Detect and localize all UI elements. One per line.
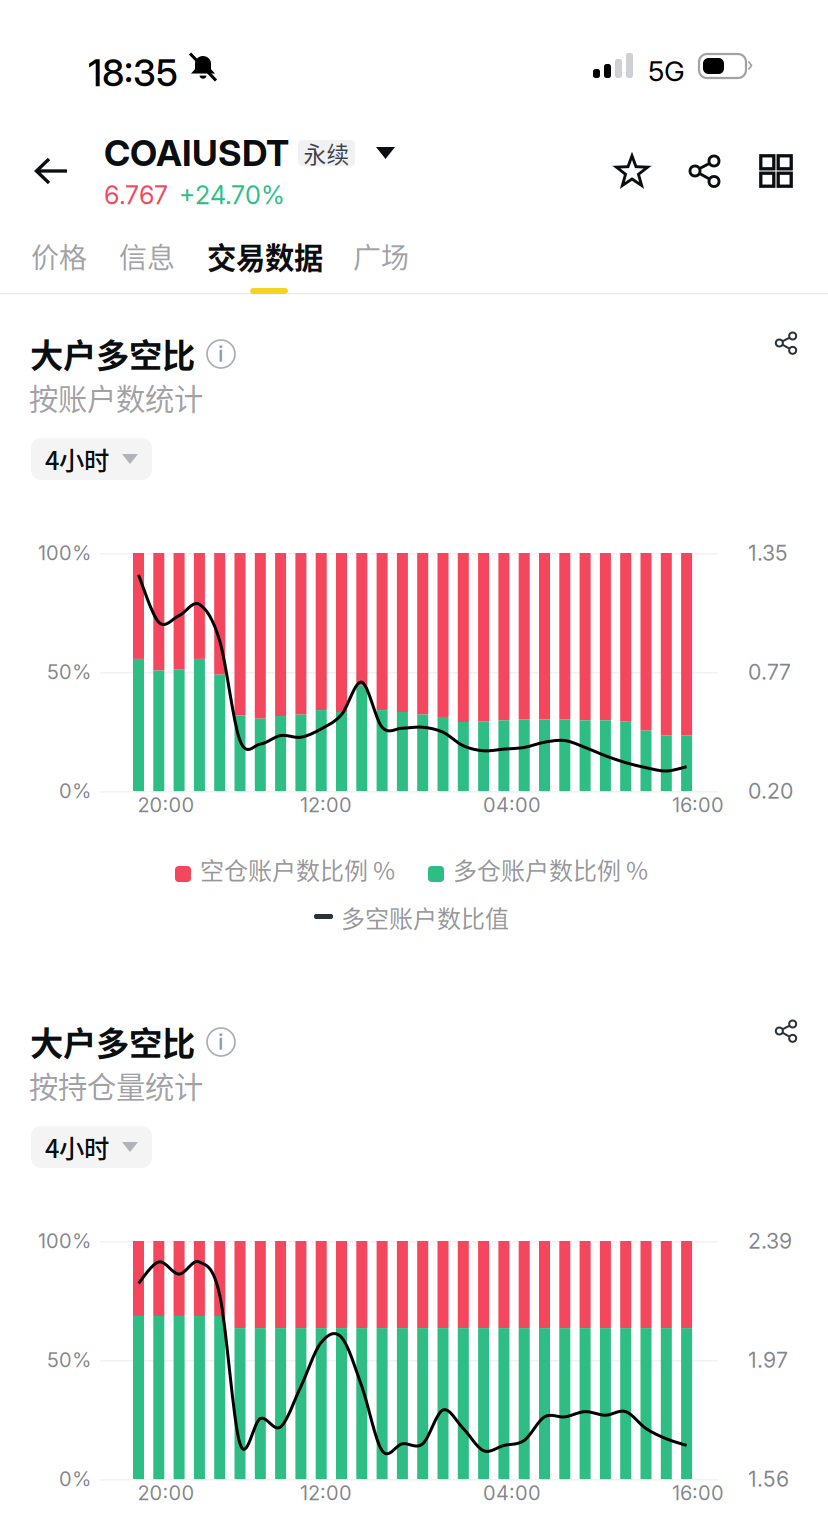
button[interactable]: 交易数据 [201,229,329,283]
button[interactable]: 4小时 [31,438,152,480]
staticText: 0% [59,1467,91,1491]
staticText: 广场 [353,236,409,276]
staticText: i [218,340,224,367]
staticText: 1.97 [748,1347,788,1373]
staticText: 按持仓量统计 [29,1064,203,1106]
staticText: 按账户数统计 [29,376,203,418]
button[interactable]: 价格 [21,229,97,283]
staticText: 0.20 [748,778,793,804]
button[interactable]: Favorite [605,144,659,198]
staticText: 04:00 [483,1481,541,1505]
staticText: 价格 [31,236,87,276]
staticText: 多空账户数比值 [341,900,509,935]
staticText: 16:00 [672,1481,724,1505]
staticText: 20:00 [137,793,194,817]
staticText: i [218,1028,224,1055]
staticText: 交易数据 [207,235,323,277]
staticText: 16:00 [672,793,724,817]
staticText: 1.56 [748,1466,789,1492]
staticText: 大户多空比 [30,329,195,377]
button[interactable]: More options [749,144,803,198]
staticText: 20:00 [137,1481,194,1505]
staticText: 永续 [303,137,349,169]
staticText: 5G [648,54,685,88]
staticText: 0.77 [748,659,791,685]
staticText: 信息 [119,236,175,276]
staticText: 4小时 [45,1129,109,1165]
staticText: 4小时 [45,441,109,477]
button[interactable]: COAIUSDT [104,131,395,175]
button[interactable]: 4小时 [31,1126,152,1168]
staticText: 1.35 [748,540,788,566]
button[interactable]: 信息 [109,229,185,283]
staticText: +24.70% [179,180,285,210]
staticText: 50% [47,1348,91,1372]
button[interactable]: Share chart [763,320,809,366]
staticText: 0% [59,779,91,803]
staticText: 100% [38,1229,91,1253]
staticText: 100% [38,541,91,565]
button[interactable]: Back [10,136,94,206]
staticText: 50% [47,660,91,684]
staticText: 多仓账户数比例 % [453,852,648,887]
staticText: 04:00 [483,793,541,817]
staticText: 2.39 [748,1228,792,1254]
button[interactable]: Share [678,144,731,198]
button[interactable]: Share chart [763,1008,809,1054]
staticText: COAIUSDT [104,131,289,175]
staticText: 18:35 [88,50,178,95]
button[interactable]: 广场 [343,229,419,283]
staticText: 12:00 [300,793,352,817]
staticText: 12:00 [300,1481,352,1505]
staticText: 空仓账户数比例 % [200,852,395,887]
staticText: 大户多空比 [30,1017,195,1065]
staticText: 6.767 [104,180,168,210]
